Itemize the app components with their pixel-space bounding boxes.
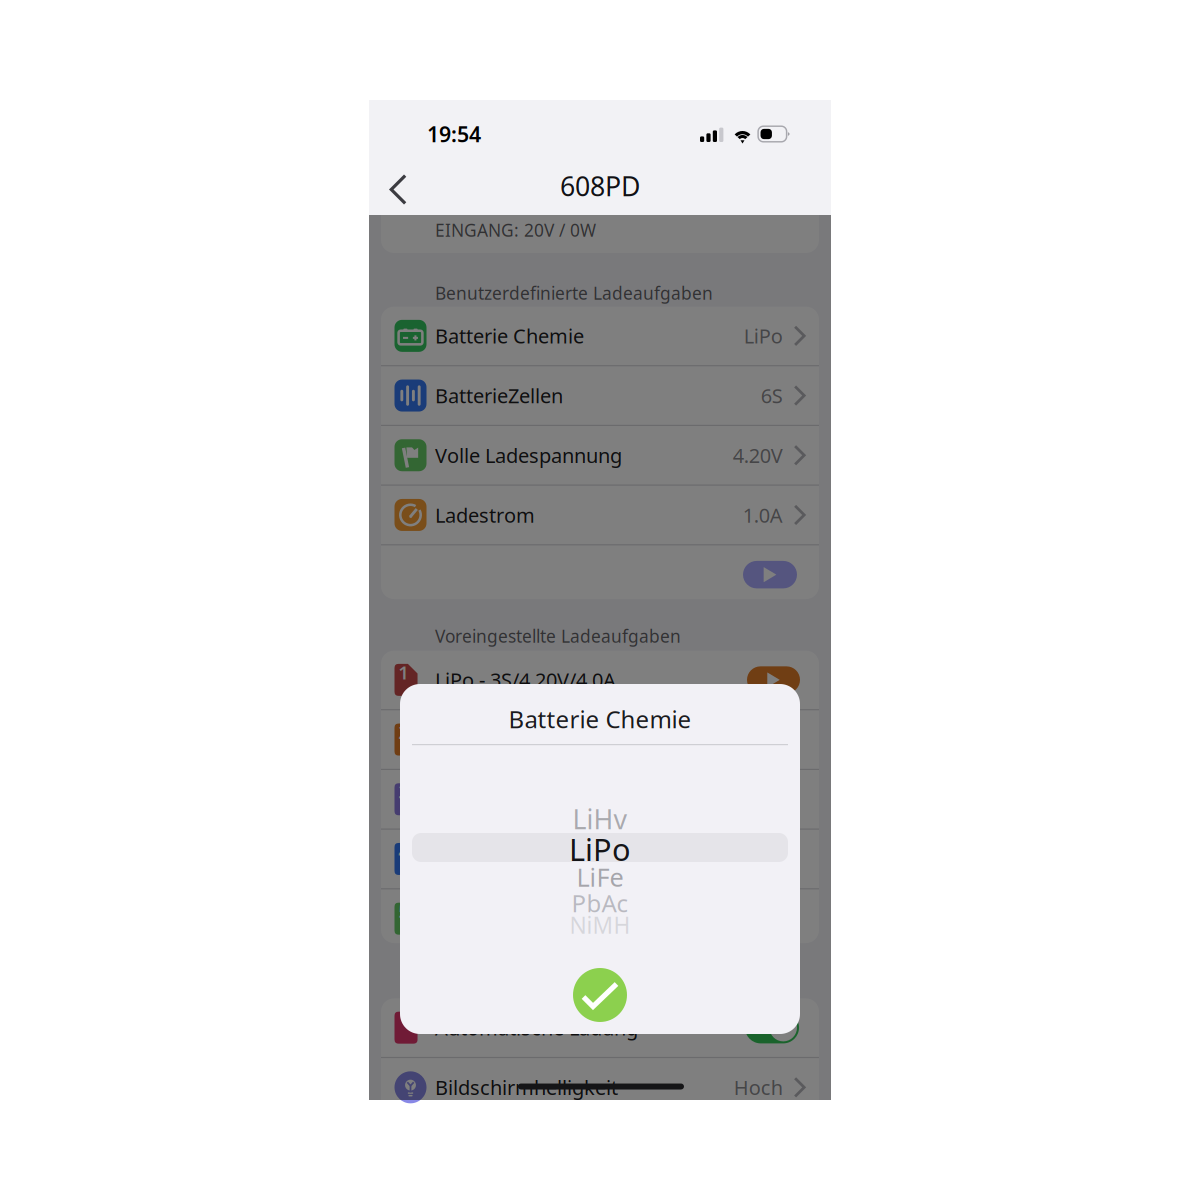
staticText: 1 xyxy=(398,660,409,685)
staticText: 608PD xyxy=(560,168,640,204)
staticText: Hoch xyxy=(734,1074,783,1101)
staticText: 1.0A xyxy=(743,502,783,528)
staticText: LiPo xyxy=(569,829,631,869)
staticText: Voreingestellte Ladeaufgaben xyxy=(435,624,681,647)
button[interactable]: 5 xyxy=(381,889,819,948)
staticText: Bildschirmhelligkeit xyxy=(435,1074,618,1101)
staticText: 6S xyxy=(761,382,783,409)
staticText: 4.20V xyxy=(733,442,783,469)
button[interactable]: Start charging xyxy=(743,561,797,588)
staticText: Ladestrom xyxy=(435,502,535,528)
staticText: LiHv - 3S/4.35V/4.0A xyxy=(435,786,617,813)
staticText: NiMH - 8S/1.45V/2.0A xyxy=(435,905,630,932)
staticText: LiPo - 3S/4.20V/4.0A xyxy=(435,667,616,693)
staticText: LiPo - 4S/4.20V/3.0A xyxy=(435,726,616,753)
button[interactable]: Ladestrom xyxy=(381,486,819,544)
button[interactable]: Back xyxy=(378,167,420,212)
button[interactable]: Confirm xyxy=(573,968,627,1022)
staticText: PbAc xyxy=(571,887,628,919)
staticText: Automatische Ladung xyxy=(435,1014,638,1041)
staticText: 5 xyxy=(398,899,409,923)
button[interactable]: 3 xyxy=(381,770,819,828)
staticText: 19:54 xyxy=(427,120,481,148)
staticText: LiFe - 4S/3.60V/3.0A xyxy=(435,846,613,872)
staticText: BatterieZellen xyxy=(435,382,563,409)
button[interactable]: Volle Ladespannung xyxy=(381,426,819,484)
button[interactable]: Batterie Chemie xyxy=(381,307,819,365)
button[interactable]: Bildschirmhelligkeit xyxy=(381,1058,819,1117)
button[interactable]: 4 xyxy=(381,830,819,888)
button[interactable]: 2 xyxy=(381,710,819,769)
staticText: LiFe xyxy=(576,860,623,894)
staticText: Volle Ladespannung xyxy=(435,442,622,469)
staticText: Benutzerdefinierte Ladeaufgaben xyxy=(435,281,713,304)
staticText: NiMH xyxy=(569,910,630,940)
staticText: Batterie Chemie xyxy=(435,323,584,349)
staticText: EINGANG: 20V / 0W xyxy=(435,218,596,241)
staticText: 2 xyxy=(398,719,409,744)
button[interactable]: BatterieZellen xyxy=(381,366,819,425)
staticText: LiPo xyxy=(744,323,783,349)
staticText: Batterie Chemie xyxy=(508,703,691,735)
staticText: 3 xyxy=(398,779,409,804)
staticText: 4 xyxy=(398,839,409,864)
button[interactable]: 1 xyxy=(381,651,819,709)
button[interactable] xyxy=(381,998,819,1057)
staticText: LiHv xyxy=(572,801,627,837)
